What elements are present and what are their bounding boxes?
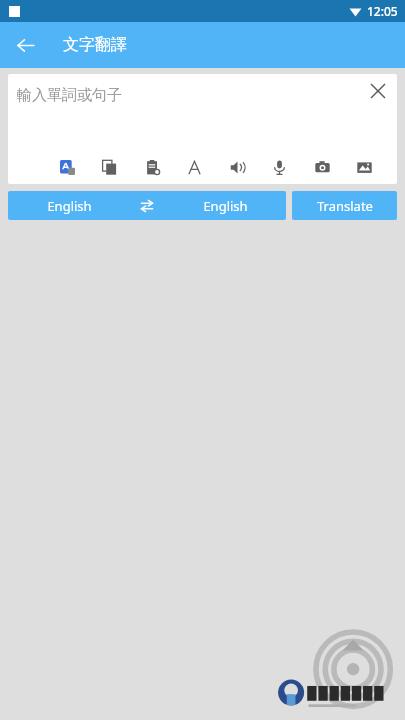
- staticText: English: [203, 197, 248, 215]
- button[interactable]: English: [164, 191, 286, 220]
- button[interactable]: Text size: [181, 154, 207, 180]
- button[interactable]: Copy: [96, 154, 122, 180]
- button[interactable]: Back: [6, 26, 44, 64]
- button[interactable]: Speak: [224, 154, 250, 180]
- button[interactable]: Paste: [139, 154, 165, 180]
- staticText: 輸入單詞或句子: [17, 86, 122, 105]
- button[interactable]: English: [8, 191, 130, 220]
- button[interactable]: Image: [351, 154, 377, 180]
- staticText: Translate: [317, 197, 373, 215]
- staticText: English: [47, 197, 92, 215]
- button[interactable]: Camera: [309, 154, 335, 180]
- button[interactable]: Swap languages: [130, 191, 164, 220]
- button[interactable]: Clear: [362, 75, 394, 107]
- button[interactable]: Voice input: [266, 154, 292, 180]
- staticText: 文字翻譯: [63, 35, 127, 55]
- staticText: 12:05: [367, 3, 398, 19]
- button[interactable]: Translate: [292, 191, 397, 220]
- button[interactable]: Translate language: [54, 154, 80, 180]
